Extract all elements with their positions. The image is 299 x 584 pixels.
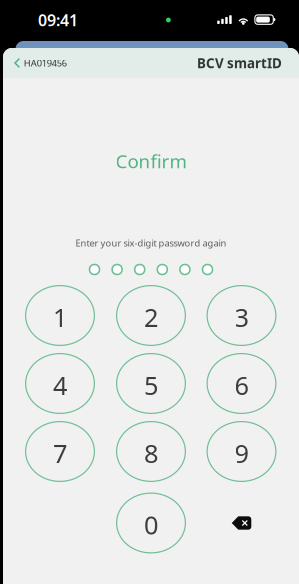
button[interactable]: 4 (25, 353, 95, 414)
button[interactable]: 8 (116, 421, 186, 482)
button[interactable]: 6 (206, 353, 276, 414)
staticText: 4 (53, 368, 67, 402)
button[interactable]: 2 (116, 285, 186, 346)
staticText: 6 (234, 368, 248, 402)
staticText: 09:41 (38, 9, 78, 31)
staticText: BCV smartID (197, 54, 282, 72)
staticText: 5 (144, 368, 158, 402)
staticText: HA019456 (24, 57, 67, 69)
button[interactable]: 3 (206, 285, 276, 346)
staticText: 2 (144, 300, 158, 334)
staticText: 1 (53, 300, 67, 334)
button[interactable]: 9 (206, 421, 276, 482)
button[interactable]: 1 (25, 285, 95, 346)
staticText: 7 (53, 436, 67, 470)
button[interactable]: 0 (116, 492, 186, 553)
button[interactable]: 5 (116, 353, 186, 414)
button[interactable]: 7 (25, 421, 95, 482)
staticText: Confirm (115, 149, 186, 173)
staticText: 9 (234, 436, 248, 470)
staticText: 8 (144, 436, 158, 470)
button[interactable]: Delete (206, 492, 276, 553)
staticText: Enter your six-digit password again (75, 237, 226, 249)
button[interactable]: HA019456 (3, 49, 67, 77)
staticText: 3 (234, 300, 248, 334)
staticText: 0 (144, 508, 158, 541)
